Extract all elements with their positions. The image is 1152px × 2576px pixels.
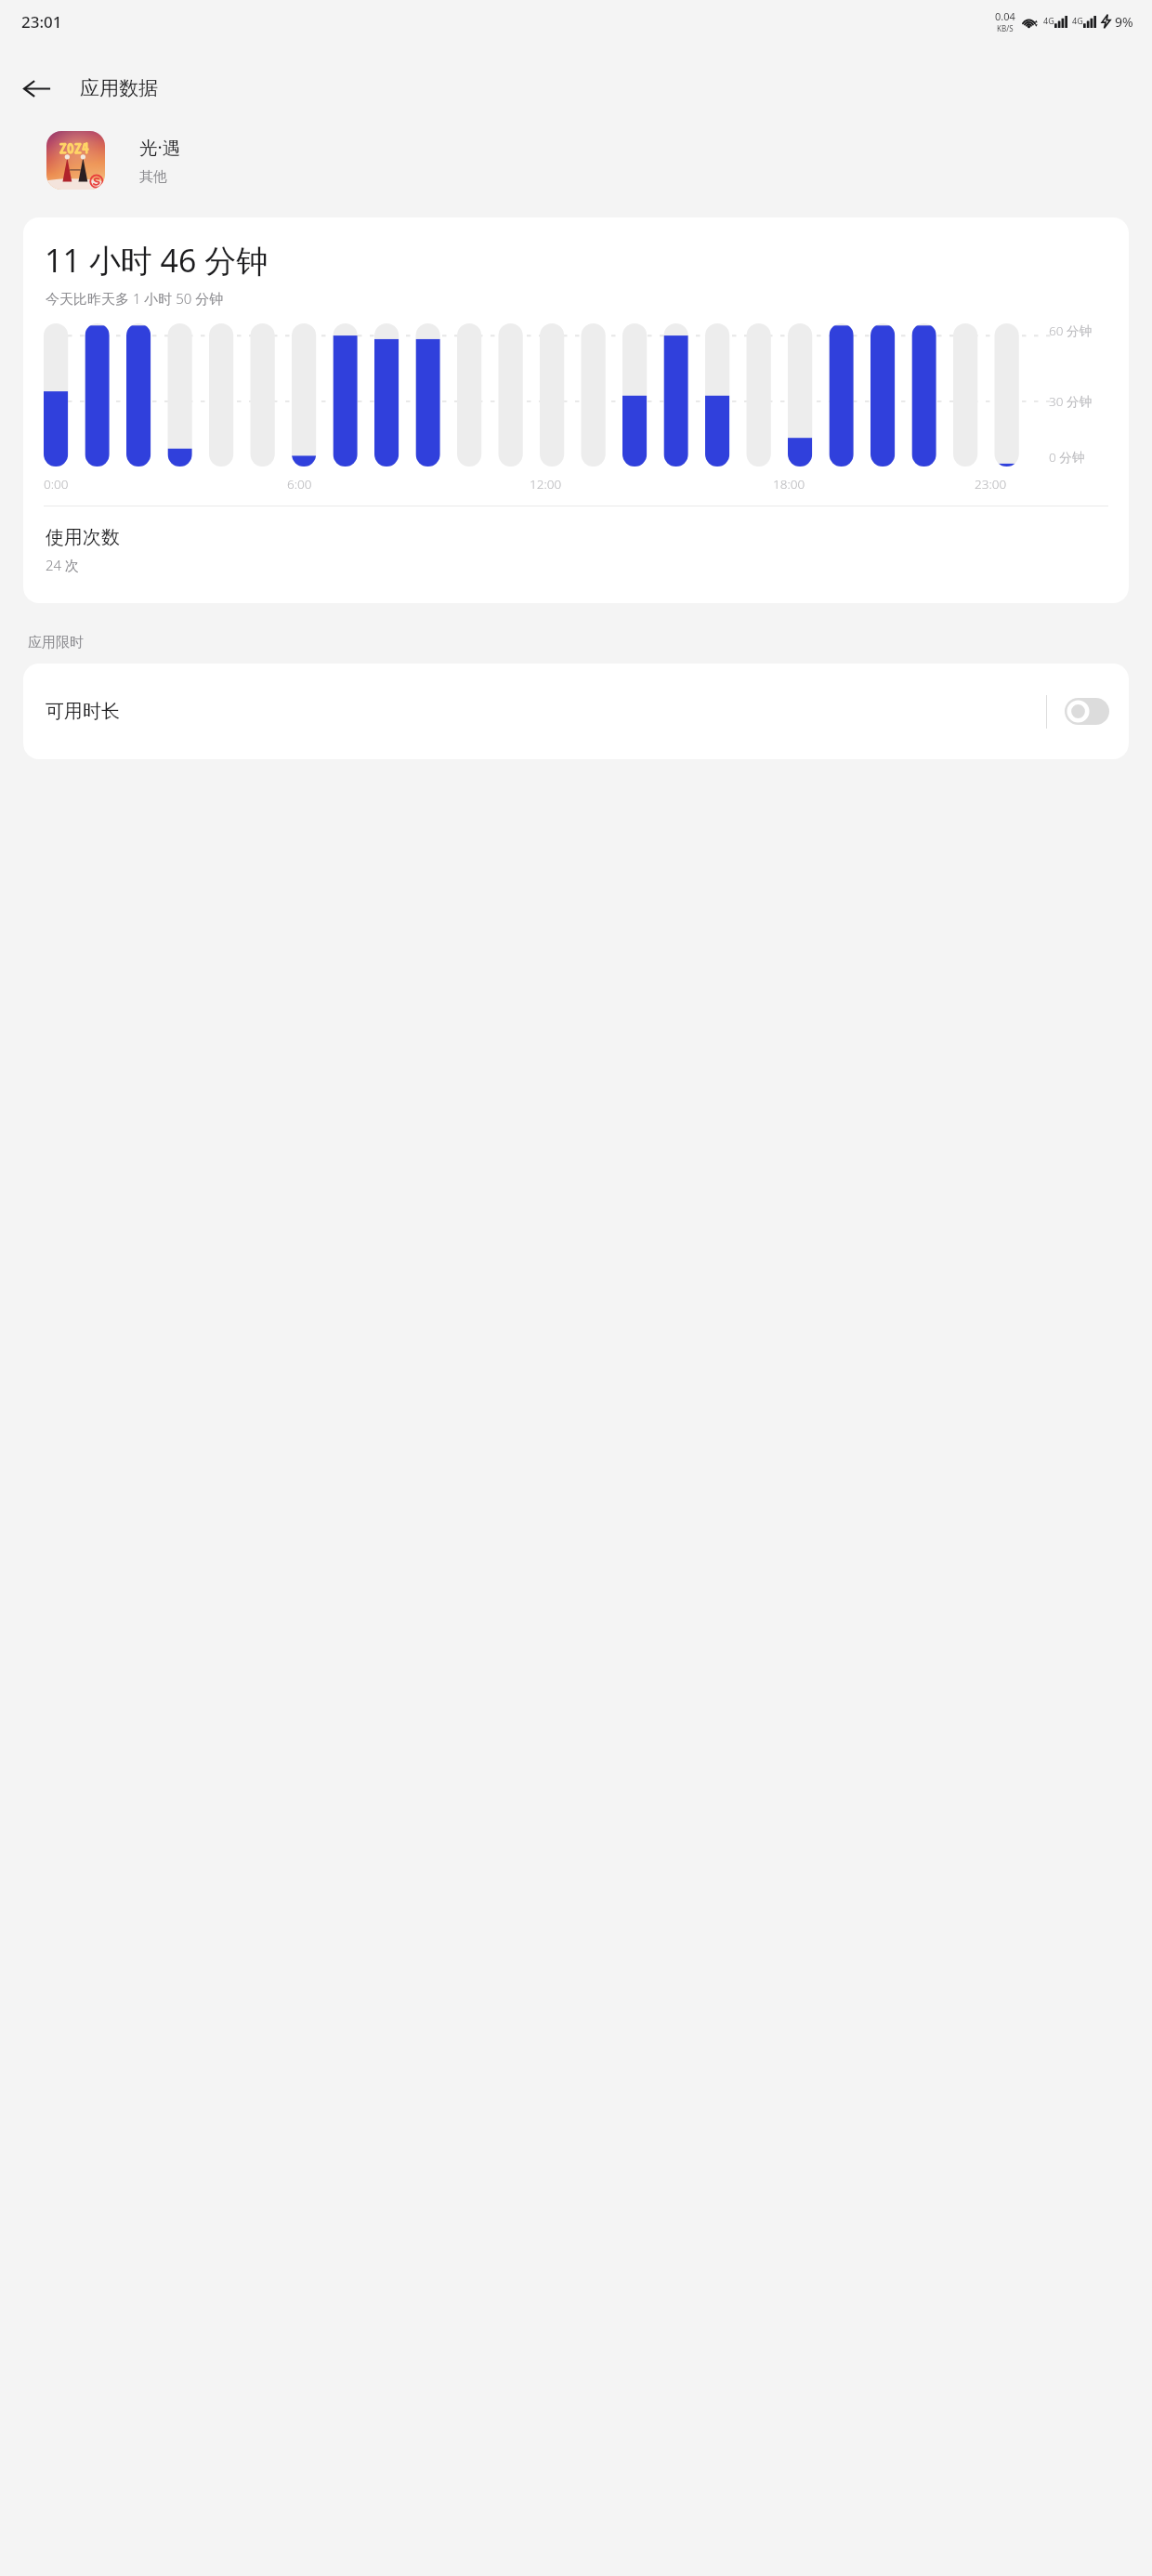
button[interactable]: 可用时长 [23,664,1129,759]
button[interactable]: 可用时长开关，已关闭 [1065,698,1109,725]
staticText: 9% [1115,13,1133,31]
button[interactable]: 返回 [14,66,59,111]
staticText: 23:00 [975,476,1007,493]
staticText: 12:00 [530,476,562,493]
staticText: 其他 [139,168,167,186]
staticText: 应用限时 [28,634,84,651]
staticText: 18:00 [773,476,805,493]
staticText: 0.04 [995,9,1015,23]
staticText: 可用时长 [46,700,120,723]
staticText: 11 小时 46 分钟 [45,239,268,282]
button[interactable]: 光·遇 [46,131,1126,190]
staticText: 24 次 [46,556,80,574]
staticText: 使用次数 [46,526,120,549]
staticText: 0 分钟 [1049,449,1085,466]
staticText: 光·遇 [139,135,181,160]
staticText: 4G [1072,15,1083,26]
staticText: 60 分钟 [1049,322,1092,339]
staticText: 4G [1043,15,1054,26]
staticText: 今天比昨天多 1 小时 50 分钟 [46,289,224,308]
staticText: 6:00 [287,476,312,493]
staticText: 23:01 [21,11,62,33]
staticText: KB/S [997,23,1014,33]
button[interactable]: 11 小时 46 分钟 [23,217,1129,603]
staticText: 应用数据 [80,76,158,100]
staticText: 30 分钟 [1049,393,1092,410]
staticText: 0:00 [44,476,69,493]
